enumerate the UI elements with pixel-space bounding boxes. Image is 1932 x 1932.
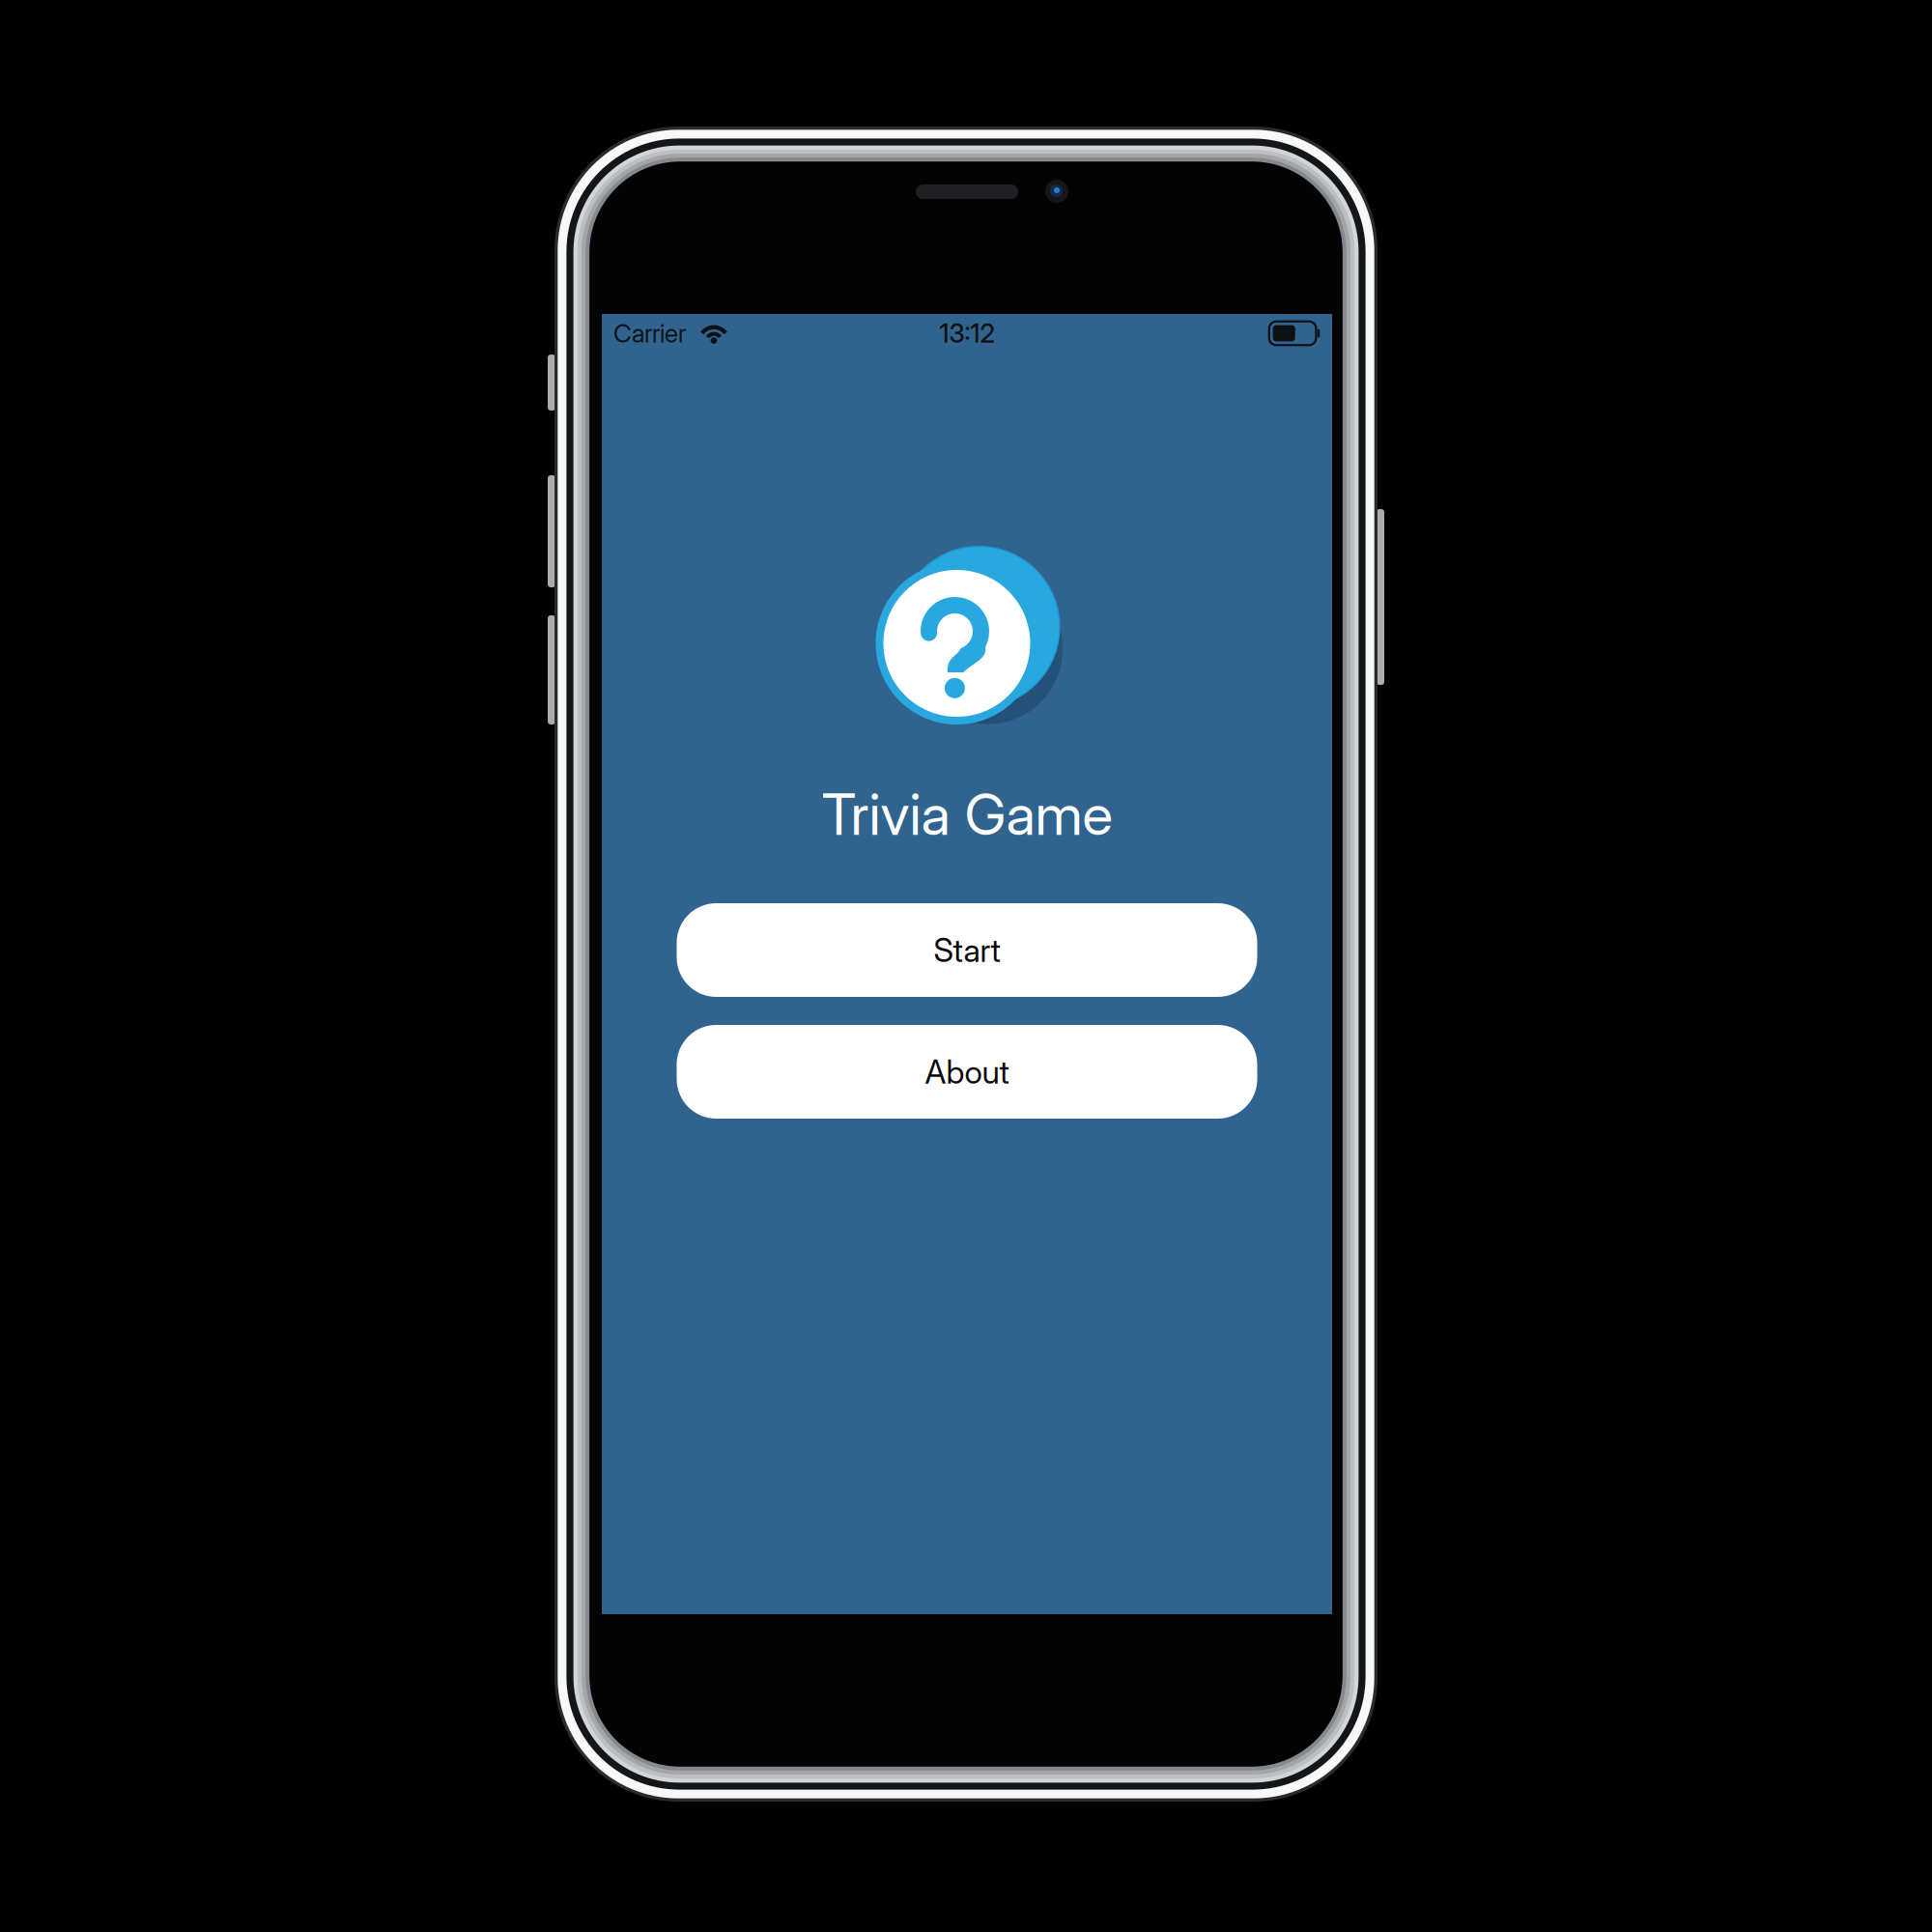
staticText: About (925, 1052, 1009, 1091)
staticText: 13:12 (939, 318, 994, 349)
staticText: Trivia Game (822, 780, 1112, 849)
button[interactable]: Start (677, 903, 1257, 997)
button[interactable]: About (677, 1025, 1257, 1119)
staticText: Carrier (613, 318, 686, 349)
staticText: Start (934, 931, 1000, 969)
